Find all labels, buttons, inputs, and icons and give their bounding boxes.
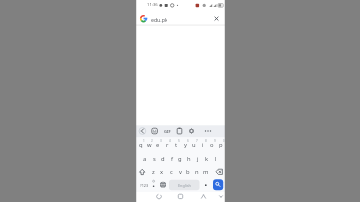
staticText: g: [178, 155, 182, 163]
button[interactable]: 8: [198, 135, 214, 147]
staticText: 1: [143, 139, 145, 143]
button[interactable]: [138, 126, 147, 136]
button[interactable]: [169, 180, 200, 191]
staticText: d: [161, 155, 165, 163]
button[interactable]: 3: [153, 135, 169, 147]
staticText: f: [171, 155, 173, 163]
button[interactable]: [201, 126, 213, 136]
staticText: w: [147, 141, 152, 149]
staticText: i: [202, 141, 204, 149]
button[interactable]: [176, 193, 186, 202]
button[interactable]: GIF: [159, 125, 175, 137]
button[interactable]: English: [176, 179, 192, 191]
button[interactable]: f: [164, 153, 180, 165]
button[interactable]: g: [172, 153, 188, 165]
staticText: y: [184, 141, 187, 149]
button[interactable]: i: [195, 139, 211, 151]
staticText: b: [186, 168, 190, 176]
button[interactable]: m: [198, 166, 214, 178]
button[interactable]: t: [168, 139, 184, 151]
button[interactable]: a: [137, 153, 153, 165]
staticText: z: [152, 168, 155, 176]
staticText: u: [192, 141, 196, 149]
staticText: English: [178, 183, 191, 188]
button[interactable]: [201, 179, 210, 191]
button[interactable]: 0: [216, 135, 232, 147]
staticText: 7: [196, 139, 198, 143]
button[interactable]: [175, 126, 184, 136]
button[interactable]: [138, 166, 148, 178]
button[interactable]: x: [154, 166, 170, 178]
staticText: GIF: [164, 129, 171, 134]
staticText: ?123: [140, 183, 149, 188]
button[interactable]: r: [159, 139, 175, 151]
button[interactable]: 6: [180, 135, 196, 147]
staticText: m: [203, 168, 209, 176]
button[interactable]: [159, 179, 168, 191]
button[interactable]: [149, 179, 158, 191]
staticText: r: [166, 141, 169, 149]
staticText: 4: [169, 139, 171, 143]
button[interactable]: 7: [189, 135, 205, 147]
staticText: c: [170, 168, 173, 176]
staticText: 0: [223, 139, 225, 143]
button[interactable]: l: [208, 153, 224, 165]
button[interactable]: [138, 12, 213, 25]
button[interactable]: b: [180, 166, 196, 178]
button[interactable]: 2: [144, 135, 160, 147]
button[interactable]: w: [141, 139, 157, 151]
staticText: t: [175, 141, 178, 149]
button[interactable]: 5: [171, 135, 187, 147]
staticText: x: [160, 168, 164, 176]
button[interactable]: h: [181, 153, 197, 165]
button[interactable]: y: [177, 139, 193, 151]
button[interactable]: [154, 193, 164, 202]
button[interactable]: ?123: [136, 179, 152, 191]
button[interactable]: j: [190, 153, 206, 165]
button[interactable]: [187, 126, 196, 136]
button[interactable]: o: [204, 139, 220, 151]
button[interactable]: 4: [162, 135, 178, 147]
button[interactable]: [212, 13, 223, 24]
button[interactable]: d: [155, 153, 171, 165]
staticText: 6: [187, 139, 189, 143]
button[interactable]: q: [133, 139, 149, 151]
button[interactable]: c: [163, 166, 179, 178]
staticText: 8: [205, 139, 207, 143]
button[interactable]: u: [186, 139, 202, 151]
button[interactable]: z: [145, 166, 161, 178]
button[interactable]: [216, 193, 225, 202]
button[interactable]: n: [189, 166, 205, 178]
staticText: edu.pk: [151, 16, 167, 23]
button[interactable]: [150, 126, 159, 136]
button[interactable]: [214, 166, 224, 178]
staticText: n: [195, 168, 199, 176]
button[interactable]: 1: [136, 135, 152, 147]
button[interactable]: v: [172, 166, 188, 178]
staticText: 9: [214, 139, 216, 143]
staticText: o: [210, 141, 214, 149]
button[interactable]: [198, 193, 208, 202]
staticText: k: [205, 155, 209, 163]
button[interactable]: p: [213, 139, 229, 151]
button[interactable]: [213, 179, 224, 191]
staticText: 3: [160, 139, 162, 143]
staticText: l: [215, 155, 217, 163]
staticText: s: [153, 155, 156, 163]
staticText: p: [219, 141, 223, 149]
button[interactable]: s: [146, 153, 162, 165]
staticText: h: [187, 155, 191, 163]
button[interactable]: k: [199, 153, 215, 165]
staticText: q: [139, 141, 143, 149]
staticText: j: [197, 155, 199, 163]
staticText: a: [143, 155, 147, 163]
staticText: 2: [151, 139, 153, 143]
staticText: e: [156, 141, 160, 149]
staticText: v: [179, 168, 182, 176]
staticText: 11:36: [147, 2, 158, 8]
button[interactable]: 9: [207, 135, 223, 147]
staticText: 5: [178, 139, 180, 143]
button[interactable]: e: [150, 139, 166, 151]
